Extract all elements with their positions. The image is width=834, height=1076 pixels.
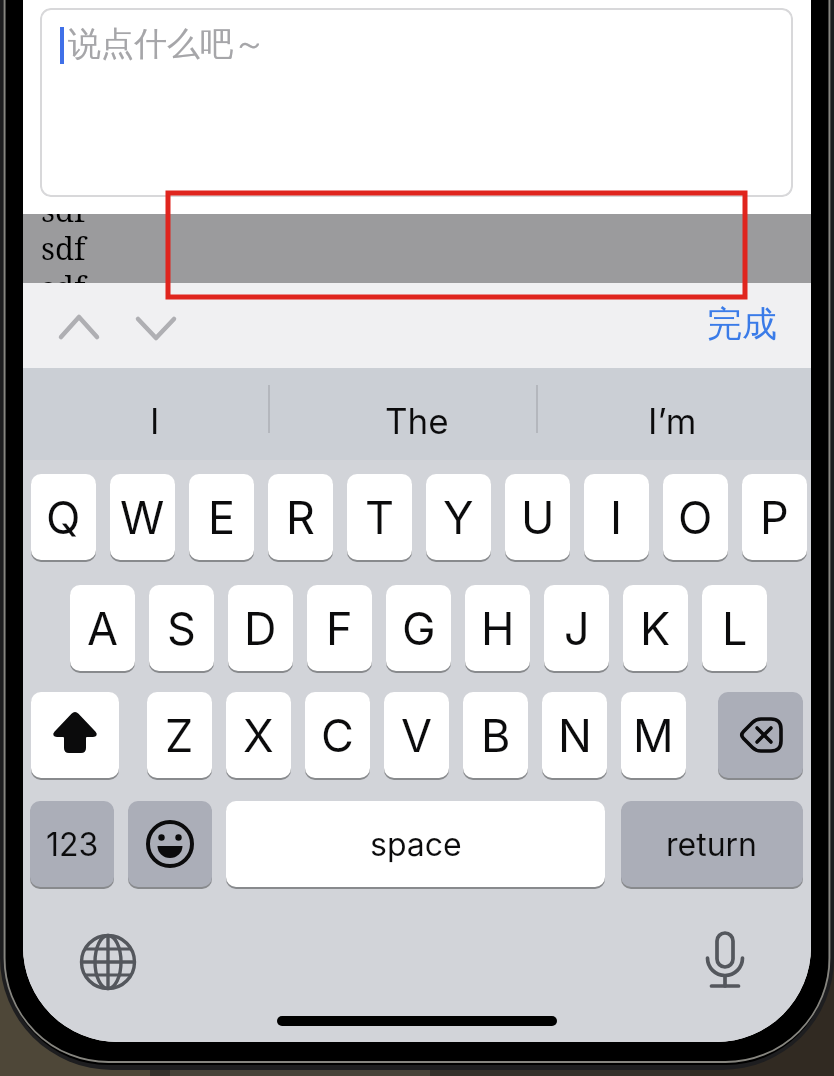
button[interactable]: F [307, 585, 372, 671]
button[interactable]: T [347, 474, 412, 560]
staticText: 说点什么吧～ [68, 23, 266, 65]
staticText: J [564, 601, 590, 655]
button[interactable]: K [623, 585, 688, 671]
staticText: space [370, 825, 462, 864]
staticText: Y [443, 490, 474, 544]
button[interactable]: J [544, 585, 609, 671]
staticText: G [402, 601, 436, 655]
staticText: sdf [41, 227, 86, 269]
staticText: H [481, 601, 515, 655]
button[interactable]: return [621, 801, 803, 887]
staticText: I’m [648, 400, 697, 442]
button[interactable]: M [621, 692, 686, 778]
staticText: U [521, 490, 555, 544]
staticText: K [640, 601, 671, 655]
staticText: I [610, 490, 623, 544]
button[interactable]: X [226, 692, 291, 778]
button[interactable]: I’m [597, 382, 747, 460]
staticText: sdf [41, 266, 86, 308]
button[interactable]: U [505, 474, 570, 560]
button[interactable]: H [465, 585, 530, 671]
button[interactable]: D [228, 585, 293, 671]
staticText: sdf [41, 189, 86, 231]
button[interactable]: 完成 [687, 297, 797, 351]
button[interactable]: A [70, 585, 135, 671]
staticText: C [321, 708, 354, 762]
button[interactable] [689, 920, 761, 1000]
button[interactable]: space [226, 801, 605, 887]
staticText: 123 [46, 825, 99, 864]
button[interactable]: 123 [30, 801, 114, 887]
staticText: O [678, 490, 713, 544]
button[interactable]: B [463, 692, 528, 778]
button[interactable]: V [384, 692, 449, 778]
staticText: return [666, 825, 758, 864]
button[interactable]: I [584, 474, 649, 560]
button[interactable]: Y [426, 474, 491, 560]
staticText: E [208, 490, 236, 544]
staticText: X [243, 708, 274, 762]
staticText: B [481, 708, 511, 762]
button[interactable]: G [386, 585, 451, 671]
button[interactable]: I [80, 382, 230, 460]
button[interactable] [40, 8, 793, 197]
staticText: D [244, 601, 277, 655]
staticText: I [150, 400, 160, 442]
staticText: A [87, 601, 119, 655]
button[interactable] [48, 300, 183, 356]
button[interactable] [31, 692, 119, 778]
button[interactable]: E [189, 474, 254, 560]
button[interactable]: Z [147, 692, 212, 778]
staticText: F [326, 601, 353, 655]
button[interactable] [73, 927, 143, 997]
button[interactable]: W [110, 474, 175, 560]
staticText: The [385, 400, 449, 442]
staticText: R [286, 490, 315, 544]
button[interactable]: N [542, 692, 607, 778]
button[interactable] [718, 692, 803, 778]
staticText: M [633, 708, 674, 762]
staticText: T [365, 490, 395, 544]
staticText: L [722, 601, 748, 655]
button[interactable]: R [268, 474, 333, 560]
button[interactable]: C [305, 692, 370, 778]
button[interactable]: O [663, 474, 728, 560]
staticText: S [167, 601, 196, 655]
staticText: Z [165, 708, 194, 762]
staticText: N [558, 708, 592, 762]
staticText: P [760, 490, 789, 544]
button[interactable]: S [149, 585, 214, 671]
button[interactable]: P [742, 474, 807, 560]
button[interactable] [128, 801, 212, 887]
button[interactable]: The [342, 382, 492, 460]
staticText: 完成 [707, 302, 777, 346]
button[interactable]: Q [31, 474, 96, 560]
staticText: V [401, 708, 433, 762]
staticText: W [120, 490, 165, 544]
staticText: Q [46, 490, 81, 544]
button[interactable]: L [702, 585, 767, 671]
